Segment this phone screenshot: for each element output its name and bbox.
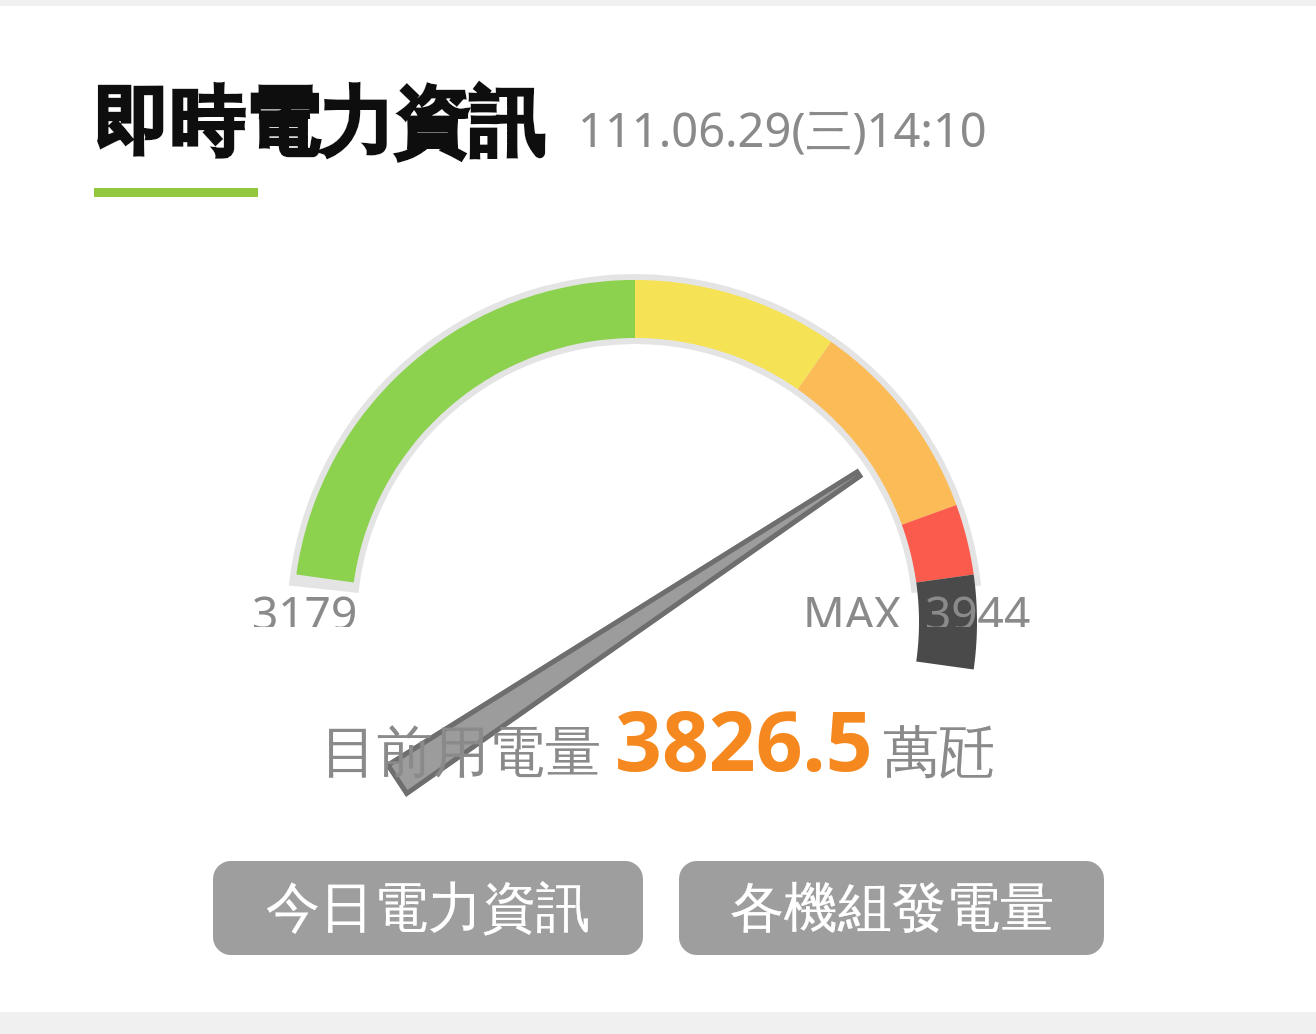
staticText: 萬瓩 bbox=[883, 717, 995, 788]
staticText: 即時電力資訊 bbox=[94, 76, 544, 170]
staticText: 3826.5 bbox=[615, 683, 873, 795]
staticText: 今日電力資訊 bbox=[266, 874, 590, 942]
staticText: 3179 bbox=[252, 581, 358, 627]
button[interactable]: 今日電力資訊 bbox=[213, 861, 643, 955]
staticText: 111.06.29(三)14:10 bbox=[578, 97, 987, 161]
button[interactable]: 各機組發電量 bbox=[679, 861, 1104, 955]
staticText: 目前用電量 bbox=[321, 717, 601, 788]
staticText: MAX 3944 bbox=[803, 581, 1031, 627]
staticText: 各機組發電量 bbox=[730, 874, 1054, 942]
